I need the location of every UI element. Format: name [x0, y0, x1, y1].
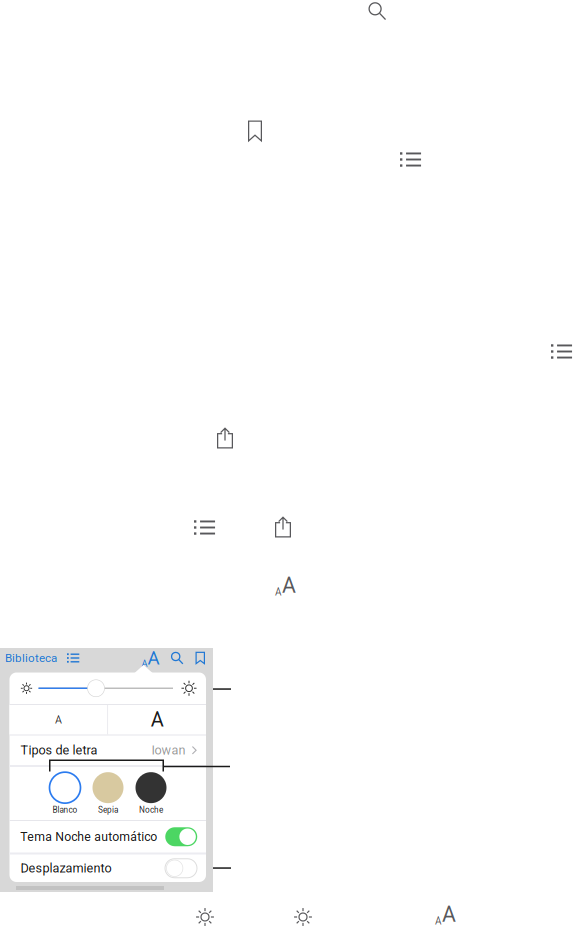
button[interactable]: Contents	[57, 653, 80, 662]
staticText: A	[147, 647, 159, 669]
staticText: A	[442, 902, 456, 927]
staticText: A	[55, 713, 62, 726]
staticText: A	[141, 658, 147, 669]
button[interactable]: Text size	[141, 647, 159, 669]
staticText: A	[435, 915, 442, 927]
staticText: A	[151, 708, 164, 731]
button[interactable]: Bookmark	[183, 652, 213, 664]
staticText: Tipos de letra	[20, 743, 97, 758]
button[interactable]: Noche	[135, 772, 166, 815]
staticText: A	[275, 586, 282, 598]
button[interactable]: A	[9, 705, 107, 734]
staticText: Tema Noche automático	[20, 830, 157, 844]
staticText: Sepia	[98, 805, 118, 815]
staticText: Noche	[139, 805, 163, 815]
button[interactable]: Sepia	[92, 772, 123, 815]
staticText: Desplazamiento	[20, 861, 111, 876]
button[interactable]: Tipos de letra	[9, 735, 206, 765]
staticText: A	[282, 573, 296, 598]
button[interactable]: Search	[159, 651, 183, 664]
staticText: Blanco	[52, 805, 77, 815]
button[interactable]: Scrolling view	[165, 859, 197, 878]
button[interactable]: A	[108, 705, 206, 734]
staticText: Biblioteca	[5, 651, 57, 665]
button[interactable]: Automatic night theme	[165, 827, 197, 846]
staticText: Iowan	[152, 743, 186, 758]
button[interactable]: Blanco	[49, 772, 80, 815]
button[interactable]: Biblioteca	[0, 651, 57, 665]
